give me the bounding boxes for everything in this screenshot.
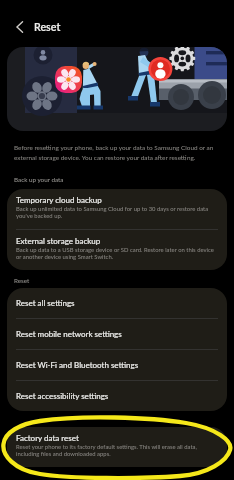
button[interactable]: Navigate up [8, 15, 32, 39]
button[interactable]: Factory data reset [7, 427, 227, 467]
staticText: Reset your phone to its factory default … [16, 443, 217, 457]
staticText: Reset [34, 20, 61, 33]
staticText: Reset accessibility settings [16, 391, 109, 401]
staticText: Factory data reset [16, 433, 79, 443]
staticText: Reset mobile network settings [16, 329, 122, 339]
button[interactable]: External storage backup [7, 230, 227, 270]
button[interactable]: Temporary cloud backup [7, 189, 227, 229]
staticText: Back up data to a USB storage device or … [16, 246, 217, 260]
button[interactable]: Reset all settings [7, 288, 227, 318]
staticText: Before resetting your phone, back up you… [14, 144, 220, 162]
staticText: Back up unlimited data to Samsung Cloud … [16, 205, 217, 219]
staticText: Reset all settings [16, 298, 75, 308]
staticText: Temporary cloud backup [16, 195, 102, 205]
staticText: External storage backup [16, 236, 101, 246]
staticText: Reset Wi-Fi and Bluetooth settings [16, 360, 139, 370]
staticText: Back up your data [14, 176, 64, 184]
staticText: Reset [14, 277, 30, 285]
button[interactable]: Reset mobile network settings [7, 319, 227, 349]
button[interactable]: Reset Wi-Fi and Bluetooth settings [7, 350, 227, 380]
button[interactable]: Reset accessibility settings [7, 381, 227, 411]
